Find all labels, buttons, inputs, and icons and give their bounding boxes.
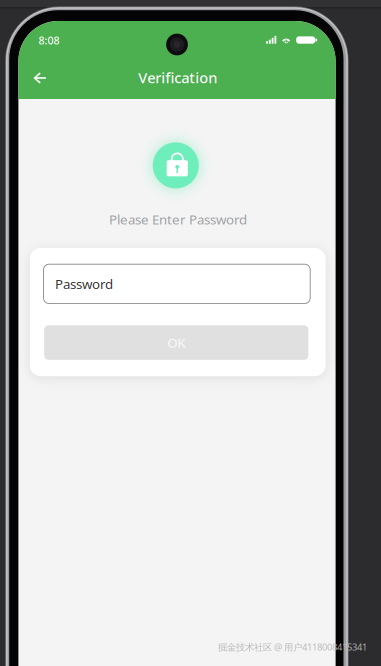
- button[interactable]: Back: [28, 66, 52, 90]
- staticText: OK: [167, 334, 185, 351]
- staticText: Password: [55, 275, 113, 293]
- staticText: Verification: [138, 68, 217, 87]
- staticText: Please Enter Password: [109, 210, 247, 228]
- staticText: 掘金技术社区 @ 用户4118008415341: [218, 641, 367, 653]
- staticText: 8:08: [39, 33, 60, 47]
